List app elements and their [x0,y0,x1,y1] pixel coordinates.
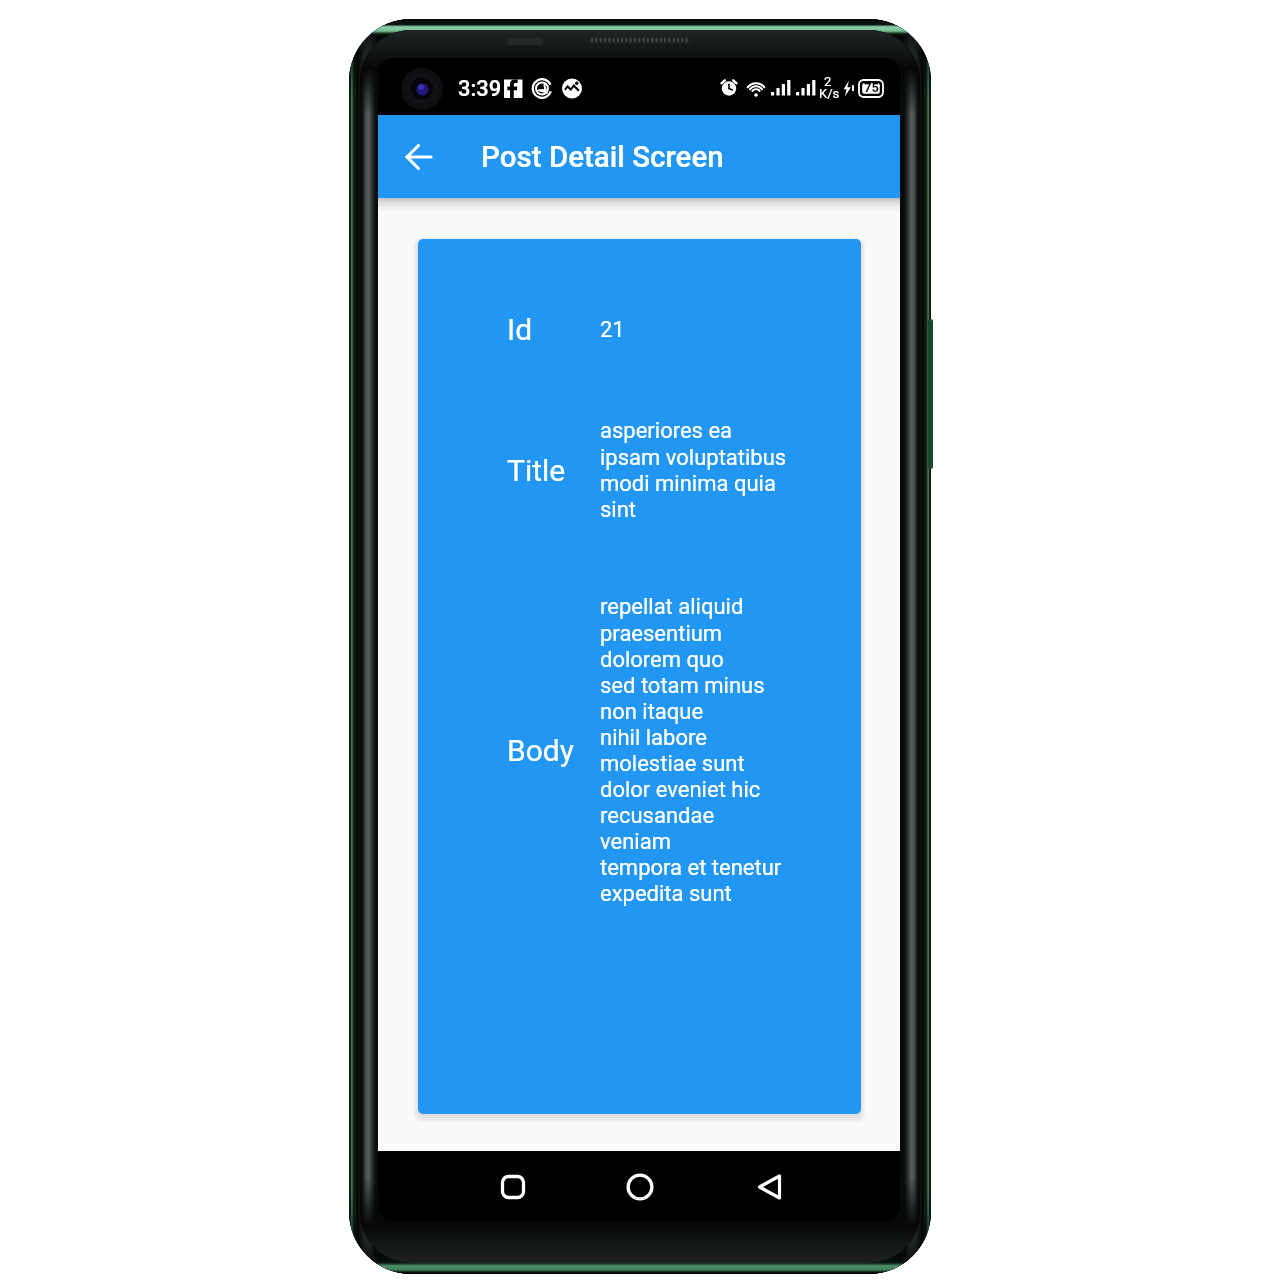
staticText: 2 [824,74,832,89]
staticText: Body [507,733,600,768]
staticText: 21 [600,317,625,343]
staticText: Title [507,453,600,488]
staticText: 3:39 [458,76,502,102]
staticText: asperiores ea ipsam voluptatibus modi mi… [600,418,787,522]
button[interactable]: Back [749,1165,793,1209]
staticText: K/s [819,86,840,101]
button[interactable]: Home [618,1165,662,1209]
staticText: Id [507,312,600,347]
button[interactable]: Navigate back [391,129,447,185]
staticText: 75 [864,80,879,95]
staticText: Post Detail Screen [481,140,724,175]
button[interactable]: Recent apps [491,1165,535,1209]
staticText: repellat aliquid praesentium dolorem quo… [600,594,782,906]
